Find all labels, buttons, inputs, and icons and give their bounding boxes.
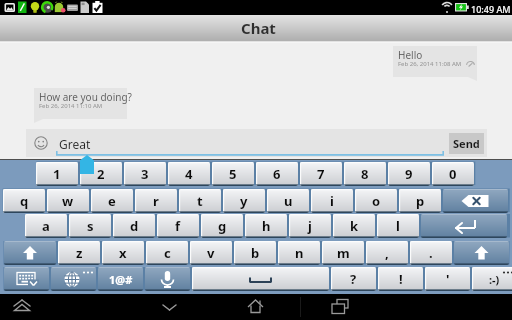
button[interactable]: Shift — [4, 241, 56, 265]
button[interactable]: :-) — [472, 267, 512, 291]
button[interactable]: 3 — [124, 162, 166, 186]
button[interactable]: w — [47, 189, 89, 213]
staticText: 0 — [449, 165, 457, 183]
button[interactable]: ' — [425, 267, 470, 291]
button[interactable]: ? — [331, 267, 376, 291]
staticText: o — [372, 192, 381, 210]
button[interactable]: g — [201, 214, 243, 238]
button[interactable]: h — [245, 214, 287, 238]
button[interactable]: 0 — [432, 162, 474, 186]
staticText: 10:49 AM — [471, 3, 511, 15]
button[interactable]: Emoji — [27, 129, 55, 157]
button[interactable]: q — [3, 189, 45, 213]
staticText: w — [62, 192, 74, 210]
staticText: k — [350, 217, 359, 235]
staticText: 6 — [273, 165, 281, 183]
button[interactable]: , — [366, 241, 408, 265]
staticText: 1 — [53, 165, 61, 183]
button[interactable]: 8 — [344, 162, 386, 186]
button[interactable]: n — [278, 241, 320, 265]
button[interactable]: t — [179, 189, 221, 213]
staticText: n — [295, 244, 304, 262]
staticText: ! — [399, 270, 403, 288]
button[interactable]: Hide keyboard — [4, 267, 49, 291]
button[interactable]: Voice input — [145, 267, 190, 291]
button[interactable]: 5 — [212, 162, 254, 186]
button[interactable]: y — [223, 189, 265, 213]
staticText: 1@# — [109, 272, 133, 287]
button[interactable]: l — [377, 214, 419, 238]
staticText: Great — [59, 136, 91, 152]
button[interactable]: 6 — [256, 162, 298, 186]
button[interactable]: 1@# — [98, 267, 143, 291]
staticText: Feb 26, 2014 11:10 AM — [39, 102, 103, 110]
staticText: b — [251, 244, 260, 262]
staticText: s — [87, 217, 94, 235]
button[interactable]: b — [234, 241, 276, 265]
staticText: . — [429, 244, 433, 262]
staticText: f — [175, 217, 181, 235]
button[interactable]: s — [69, 214, 111, 238]
staticText: u — [284, 192, 293, 210]
button[interactable]: How are you doing? — [34, 88, 127, 123]
staticText: Hello — [398, 48, 423, 62]
button[interactable]: k — [333, 214, 375, 238]
staticText: , — [385, 244, 389, 262]
button[interactable]: Great — [56, 129, 444, 157]
button[interactable]: 7 — [300, 162, 342, 186]
button[interactable]: Shift — [454, 241, 509, 265]
button[interactable]: m — [322, 241, 364, 265]
staticText: t — [197, 192, 203, 210]
button[interactable]: 2 — [80, 162, 122, 186]
button[interactable]: Back — [150, 294, 190, 320]
staticText: v — [207, 244, 215, 262]
staticText: e — [108, 192, 116, 210]
button[interactable]: ! — [378, 267, 423, 291]
button[interactable]: Space — [192, 267, 329, 291]
staticText: i — [330, 192, 334, 210]
staticText: 2 — [97, 165, 105, 183]
button[interactable]: e — [91, 189, 133, 213]
button[interactable]: 9 — [388, 162, 430, 186]
button[interactable]: v — [190, 241, 232, 265]
staticText: Feb 26, 2014 11:08 AM — [398, 60, 462, 68]
button[interactable]: f — [157, 214, 199, 238]
staticText: 4 — [185, 165, 193, 183]
button[interactable]: Hello — [393, 46, 477, 81]
staticText: Chat — [241, 18, 276, 38]
button[interactable]: Backspace — [443, 189, 508, 213]
staticText: a — [42, 217, 50, 235]
button[interactable]: 4 — [168, 162, 210, 186]
staticText: How are you doing? — [39, 90, 132, 104]
button[interactable]: p — [399, 189, 441, 213]
staticText: 5 — [229, 165, 237, 183]
staticText: d — [130, 217, 139, 235]
button[interactable]: Enter — [421, 214, 507, 238]
staticText: m — [337, 244, 350, 262]
staticText: r — [153, 192, 159, 210]
button[interactable]: . — [410, 241, 452, 265]
button[interactable]: u — [267, 189, 309, 213]
staticText: 7 — [317, 165, 325, 183]
button[interactable]: Home — [236, 294, 276, 320]
staticText: Send — [453, 136, 480, 151]
button[interactable]: 1 — [36, 162, 78, 186]
staticText: y — [240, 192, 248, 210]
button[interactable]: o — [355, 189, 397, 213]
button[interactable]: r — [135, 189, 177, 213]
staticText: z — [76, 244, 83, 262]
button[interactable]: j — [289, 214, 331, 238]
button[interactable]: Change language — [51, 267, 96, 291]
button[interactable]: Send — [449, 133, 484, 154]
staticText: p — [416, 192, 425, 210]
button[interactable]: c — [146, 241, 188, 265]
staticText: :-) — [489, 272, 500, 287]
button[interactable]: Hide keyboard — [2, 294, 42, 320]
button[interactable]: Recent apps — [320, 294, 360, 320]
staticText: x — [119, 244, 127, 262]
button[interactable]: a — [25, 214, 67, 238]
button[interactable]: d — [113, 214, 155, 238]
button[interactable]: i — [311, 189, 353, 213]
button[interactable]: z — [58, 241, 100, 265]
button[interactable]: x — [102, 241, 144, 265]
